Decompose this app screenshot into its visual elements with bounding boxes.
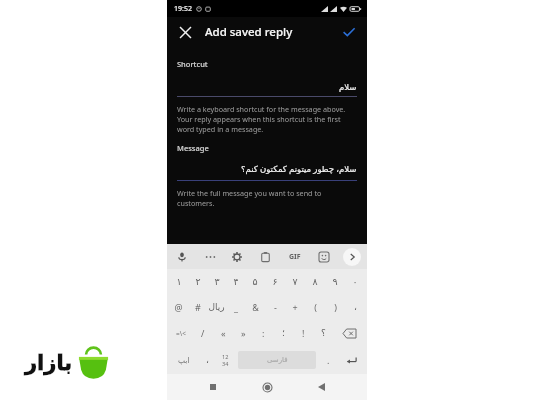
button[interactable]: ؟ xyxy=(313,320,333,346)
staticText: . xyxy=(327,354,330,366)
button[interactable]: ۲ xyxy=(188,269,207,294)
button[interactable]: Numbers xyxy=(215,348,235,372)
button[interactable]: ۷ xyxy=(285,269,305,294)
button[interactable]: ؛ xyxy=(273,320,293,346)
staticText: ( xyxy=(314,301,317,313)
staticText: 12 xyxy=(222,353,229,360)
staticText: ، xyxy=(206,355,209,365)
button[interactable]: Stickers xyxy=(315,248,333,266)
button[interactable]: @ xyxy=(169,294,188,320)
staticText: ، xyxy=(354,302,357,312)
button[interactable]: Home xyxy=(252,374,282,400)
button[interactable]: ، xyxy=(199,348,215,372)
button[interactable]: # xyxy=(188,294,207,320)
button[interactable]: Enter xyxy=(337,348,365,372)
staticText: فارسی xyxy=(267,356,288,364)
staticText: ؟ xyxy=(321,328,326,338)
staticText: ۴ xyxy=(233,276,239,287)
button[interactable]: ابپ xyxy=(169,348,199,372)
button[interactable]: - xyxy=(265,294,285,320)
button[interactable]: ۴ xyxy=(226,269,245,294)
button[interactable]: ) xyxy=(325,294,345,320)
staticText: # xyxy=(195,301,201,313)
button[interactable]: » xyxy=(233,320,253,346)
staticText: @ xyxy=(174,301,183,313)
button[interactable]: ۳ xyxy=(207,269,226,294)
staticText: =\< xyxy=(176,329,186,338)
button[interactable]: Save xyxy=(339,22,359,42)
button[interactable]: ۰ xyxy=(345,269,365,294)
staticText: سلام، چطور میتونم کمکتون کنم؟ xyxy=(241,163,357,175)
button[interactable]: Voice input xyxy=(173,248,191,266)
staticText: ۵ xyxy=(252,276,258,287)
staticText: ۲ xyxy=(195,276,201,287)
button[interactable]: : xyxy=(253,320,273,346)
staticText: GIF xyxy=(289,252,301,262)
button[interactable]: فارسی xyxy=(238,351,316,369)
button[interactable]: ۸ xyxy=(305,269,325,294)
button[interactable]: Recent apps xyxy=(198,374,228,400)
button[interactable]: & xyxy=(245,294,265,320)
staticText: Shortcut xyxy=(177,59,208,69)
button[interactable]: ۵ xyxy=(245,269,265,294)
staticText: ؛ xyxy=(282,328,285,338)
button[interactable]: More options xyxy=(201,248,219,266)
button[interactable]: Backspace xyxy=(333,320,365,346)
button[interactable]: ، xyxy=(345,294,365,320)
button[interactable]: « xyxy=(213,320,233,346)
button[interactable]: ۱ xyxy=(169,269,188,294)
staticText: + xyxy=(292,301,298,313)
button[interactable]: Expand toolbar xyxy=(343,248,361,266)
staticText: ۷ xyxy=(292,276,298,287)
staticText: Write the full message you want to send … xyxy=(177,188,322,208)
staticText: ریال xyxy=(208,302,225,312)
staticText: / xyxy=(201,327,205,339)
staticText: » xyxy=(241,327,246,339)
button[interactable]: + xyxy=(285,294,305,320)
staticText: Message xyxy=(177,143,209,153)
staticText: ۶ xyxy=(272,276,278,287)
staticText: سلام xyxy=(339,82,357,92)
staticText: : xyxy=(262,327,265,339)
staticText: 19:52 xyxy=(174,4,192,14)
button[interactable]: Clipboard xyxy=(256,248,274,266)
staticText: ۳ xyxy=(214,276,220,287)
button[interactable]: . xyxy=(319,348,337,372)
staticText: بازار xyxy=(25,351,73,375)
button[interactable]: ریال xyxy=(207,294,226,320)
button[interactable]: ( xyxy=(305,294,325,320)
staticText: 34 xyxy=(222,360,229,367)
staticText: ۹ xyxy=(332,276,338,287)
staticText: - xyxy=(274,301,277,313)
button[interactable]: Bazaar xyxy=(8,332,126,392)
staticText: ) xyxy=(334,301,337,313)
button[interactable]: _ xyxy=(226,294,245,320)
button[interactable]: Back xyxy=(306,374,336,400)
staticText: ۰ xyxy=(352,276,358,287)
staticText: Write a keyboard shortcut for the messag… xyxy=(177,104,346,134)
button[interactable]: ۹ xyxy=(325,269,345,294)
button[interactable]: ! xyxy=(293,320,313,346)
staticText: ابپ xyxy=(178,356,190,365)
staticText: & xyxy=(252,301,259,313)
staticText: ۸ xyxy=(312,276,318,287)
button[interactable]: سلام xyxy=(177,82,357,92)
button[interactable]: =\< xyxy=(169,320,193,346)
button[interactable]: Close xyxy=(175,22,195,42)
button[interactable]: ۶ xyxy=(265,269,285,294)
staticText: Add saved reply xyxy=(205,24,293,40)
staticText: ! xyxy=(302,327,305,339)
staticText: « xyxy=(221,327,226,339)
staticText: ۱ xyxy=(176,276,182,287)
button[interactable]: سلام، چطور میتونم کمکتون کنم؟ xyxy=(177,163,357,175)
button[interactable]: GIF xyxy=(284,248,306,266)
staticText: _ xyxy=(234,301,238,313)
button[interactable]: Settings xyxy=(228,248,246,266)
button[interactable]: / xyxy=(193,320,213,346)
